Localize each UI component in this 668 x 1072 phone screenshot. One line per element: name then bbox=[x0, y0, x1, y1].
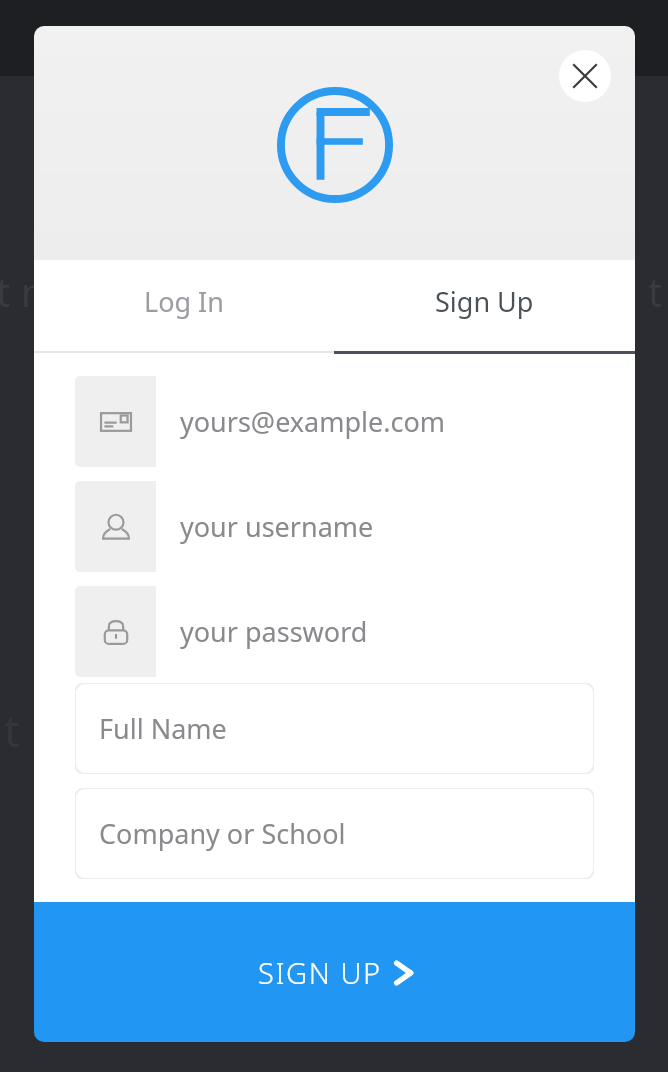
button[interactable]: Company or School bbox=[75, 788, 594, 879]
staticText: Log In bbox=[144, 283, 224, 320]
staticText: t n bbox=[0, 264, 46, 318]
button[interactable]: your password bbox=[75, 586, 594, 677]
button[interactable]: Sign Up bbox=[334, 260, 635, 354]
button[interactable]: yours@example.com bbox=[75, 376, 594, 467]
button[interactable]: SIGN UP bbox=[34, 902, 635, 1042]
staticText: your password bbox=[180, 613, 368, 650]
staticText: Sign Up bbox=[435, 283, 534, 320]
staticText: t bbox=[4, 700, 20, 760]
staticText: yours@example.com bbox=[180, 403, 446, 440]
staticText: Company or School bbox=[99, 815, 346, 852]
staticText: Full Name bbox=[99, 710, 227, 747]
button[interactable]: Full Name bbox=[75, 683, 594, 774]
staticText: your username bbox=[180, 508, 374, 545]
button[interactable]: your username bbox=[75, 481, 594, 572]
staticText: SIGN UP bbox=[258, 953, 382, 992]
staticText: t bbox=[648, 264, 663, 318]
button[interactable]: Log In bbox=[34, 260, 334, 354]
button[interactable]: Close bbox=[559, 50, 611, 102]
